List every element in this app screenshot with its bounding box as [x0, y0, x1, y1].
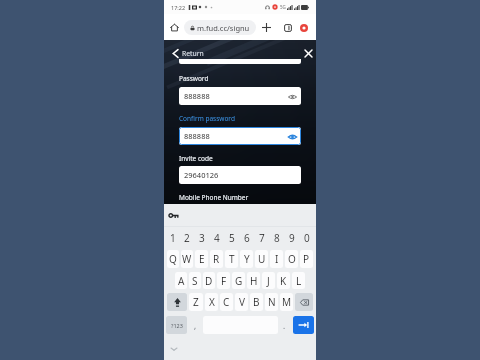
button[interactable]: Shift	[167, 293, 187, 311]
staticText: G	[235, 274, 243, 288]
button[interactable]: 3	[194, 227, 209, 248]
button[interactable]: N	[265, 293, 278, 311]
staticText: L	[296, 274, 302, 288]
button[interactable]: Hide keyboard	[168, 343, 179, 354]
button[interactable]: 2	[180, 227, 194, 248]
button[interactable]: H	[247, 272, 260, 289]
staticText: 29640126	[184, 170, 219, 180]
button[interactable]: O	[285, 250, 298, 268]
button[interactable]: Menu	[297, 21, 310, 34]
staticText: Password	[179, 74, 209, 83]
button[interactable]: G	[232, 272, 245, 289]
staticText: 888888	[184, 131, 210, 141]
button[interactable]: L	[292, 272, 305, 289]
staticText: P	[303, 252, 310, 266]
button[interactable]: 8	[269, 227, 284, 248]
staticText: Y	[244, 252, 250, 266]
staticText: 0	[304, 231, 310, 245]
staticText: Confirm password	[179, 114, 235, 123]
button[interactable]: m.fud.cc/signu	[184, 20, 256, 35]
staticText: M	[282, 295, 292, 309]
button[interactable]: 0	[299, 227, 314, 248]
staticText: m.fud.cc/signu	[197, 23, 250, 33]
staticText: E	[199, 252, 205, 266]
staticText: W	[182, 252, 192, 266]
button[interactable]: Q	[167, 250, 179, 268]
button[interactable]: Toggle password visibility	[287, 91, 298, 102]
staticText: ,	[194, 320, 197, 331]
staticText: 2	[184, 231, 190, 245]
button[interactable]: Close	[302, 47, 314, 59]
staticText: 4	[214, 231, 220, 245]
button[interactable]: T	[225, 250, 238, 268]
button[interactable]: Period	[279, 316, 290, 334]
button[interactable]: Toggle password visibility	[287, 131, 298, 142]
staticText: U	[258, 252, 266, 266]
staticText: Return	[182, 49, 204, 58]
staticText: V	[239, 295, 245, 309]
staticText: N	[268, 295, 276, 309]
staticText: 7	[259, 231, 265, 245]
button[interactable]: S	[189, 272, 201, 289]
staticText: I	[275, 252, 279, 266]
button[interactable]: 7	[254, 227, 269, 248]
button[interactable]: Home	[168, 21, 181, 34]
button[interactable]: Z	[189, 293, 203, 311]
button[interactable]: 29640126	[179, 166, 301, 184]
button[interactable]: B	[250, 293, 263, 311]
staticText: H	[250, 274, 258, 288]
staticText: S	[192, 274, 198, 288]
button[interactable]: 6	[239, 227, 254, 248]
button[interactable]: K	[277, 272, 290, 289]
button[interactable]: I	[270, 250, 283, 268]
staticText: B	[253, 295, 260, 309]
staticText: R	[213, 252, 220, 266]
staticText: 5	[229, 231, 235, 245]
staticText: T	[229, 252, 235, 266]
button[interactable]: D	[203, 272, 215, 289]
button[interactable]: Comma	[189, 316, 201, 334]
button[interactable]: Tabs	[281, 21, 294, 34]
staticText: F	[221, 274, 227, 288]
button[interactable]: U	[255, 250, 268, 268]
staticText: Invite code	[179, 154, 213, 163]
staticText: O	[288, 252, 296, 266]
staticText: 8	[274, 231, 280, 245]
button[interactable]: M	[280, 293, 293, 311]
button[interactable]: V	[235, 293, 248, 311]
button[interactable]: 4	[209, 227, 224, 248]
button[interactable]: C	[220, 293, 233, 311]
button[interactable]: Backspace	[295, 293, 313, 311]
button[interactable]: Enter	[293, 316, 314, 334]
button[interactable]: 9	[284, 227, 299, 248]
button[interactable]: A	[175, 272, 187, 289]
staticText: Z	[193, 295, 199, 309]
button[interactable]: New tab	[260, 21, 273, 34]
button[interactable]: 888888	[179, 127, 301, 145]
button[interactable]: P	[300, 250, 313, 268]
staticText: Q	[169, 252, 177, 266]
button[interactable]: 5	[224, 227, 239, 248]
staticText: C	[223, 295, 230, 309]
staticText: J	[267, 274, 270, 288]
button[interactable]: X	[205, 293, 218, 311]
button[interactable]: E	[195, 250, 208, 268]
staticText: 1	[170, 231, 176, 245]
staticText: 5G	[280, 4, 286, 10]
button[interactable]: Password manager	[167, 209, 180, 223]
button[interactable]: R	[210, 250, 223, 268]
staticText: D	[205, 274, 213, 288]
staticText: 888888	[184, 91, 210, 101]
staticText: 6	[244, 231, 250, 245]
button[interactable]: F	[217, 272, 230, 289]
button[interactable]: ?123	[166, 316, 187, 334]
button[interactable]: W	[181, 250, 193, 268]
button[interactable]: 1	[166, 227, 180, 248]
staticText: Mobile Phone Number	[179, 193, 249, 202]
staticText: A	[178, 274, 185, 288]
button[interactable]: 888888	[179, 87, 301, 105]
button[interactable]: Y	[240, 250, 253, 268]
button[interactable]: Return	[172, 44, 207, 62]
button[interactable]: J	[262, 272, 275, 289]
